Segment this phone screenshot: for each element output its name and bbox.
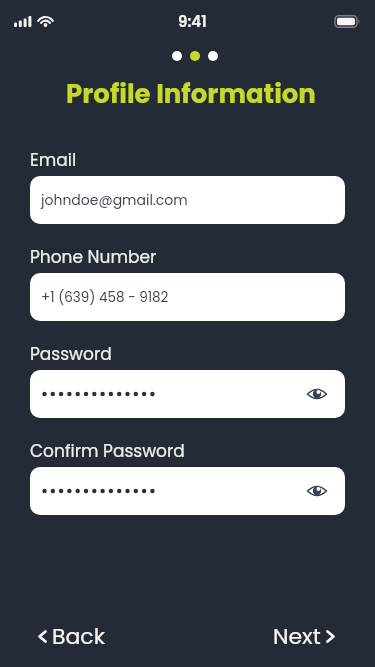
button[interactable]: Next: [273, 621, 335, 652]
staticText: 9:41: [178, 11, 207, 32]
button[interactable]: Back: [38, 621, 106, 652]
staticText: johndoe@gmail.com: [41, 190, 188, 210]
button[interactable]: [307, 483, 327, 499]
button[interactable]: [30, 370, 345, 418]
button[interactable]: +1 (639) 458 - 9182: [30, 273, 345, 321]
button[interactable]: johndoe@gmail.com: [30, 176, 345, 224]
staticText: Password: [30, 342, 112, 366]
button[interactable]: [190, 51, 200, 61]
button[interactable]: [307, 386, 327, 402]
staticText: +1 (639) 458 - 9182: [41, 288, 169, 307]
staticText: Next: [273, 621, 321, 652]
staticText: Phone Number: [30, 245, 157, 269]
button[interactable]: [30, 467, 345, 515]
staticText: Back: [52, 621, 106, 652]
staticText: Email: [30, 148, 77, 172]
staticText: Profile Information: [66, 76, 316, 112]
staticText: Confirm Password: [30, 439, 185, 463]
button[interactable]: [208, 51, 218, 61]
button[interactable]: [172, 51, 182, 61]
